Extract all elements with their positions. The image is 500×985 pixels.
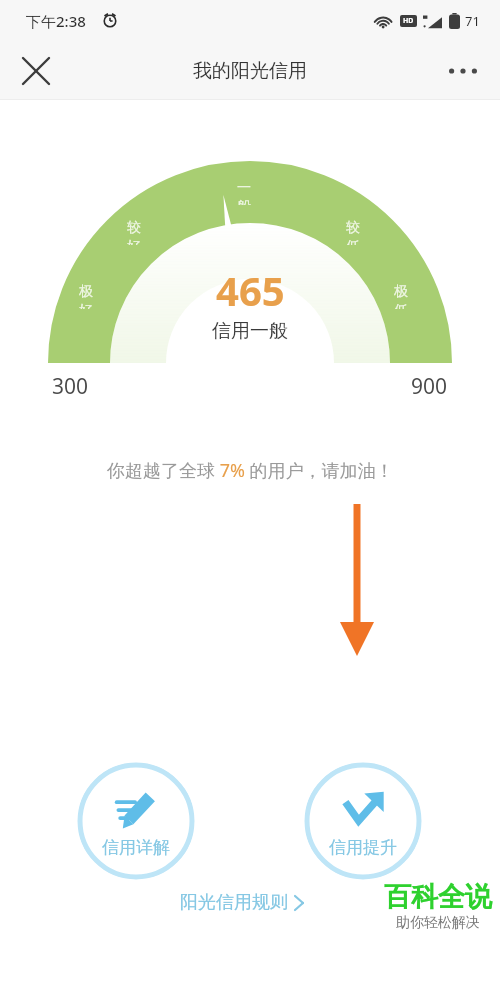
staticText: 一般	[237, 179, 263, 205]
staticText: 900	[411, 372, 448, 401]
button[interactable]: 信用提升	[304, 762, 422, 880]
staticText: 我的阳光信用	[193, 59, 307, 83]
staticText: 300	[52, 372, 89, 401]
button[interactable]: Close	[14, 49, 58, 93]
staticText: 信用详解	[102, 837, 170, 858]
staticText: 阳光信用规则	[180, 891, 288, 914]
button[interactable]: More options	[440, 48, 486, 94]
button[interactable]: 阳光信用规则	[178, 888, 306, 917]
staticText: 你超越了全球 7% 的用户，请加油！	[107, 458, 394, 483]
staticText: 较低	[346, 219, 372, 245]
staticText: 465	[216, 263, 285, 317]
staticText: 71	[465, 12, 480, 30]
staticText: 下午2:38	[26, 11, 86, 31]
staticText: 信用一般	[212, 319, 288, 343]
staticText: 助你轻松解决	[396, 914, 480, 932]
staticText: HD	[403, 16, 414, 26]
staticText: 极低	[394, 283, 420, 309]
button[interactable]: 信用详解	[77, 762, 195, 880]
staticText: 百科全说	[384, 880, 492, 914]
staticText: 极好	[79, 283, 105, 309]
staticText: 较好	[127, 219, 153, 245]
staticText: 信用提升	[329, 837, 397, 858]
